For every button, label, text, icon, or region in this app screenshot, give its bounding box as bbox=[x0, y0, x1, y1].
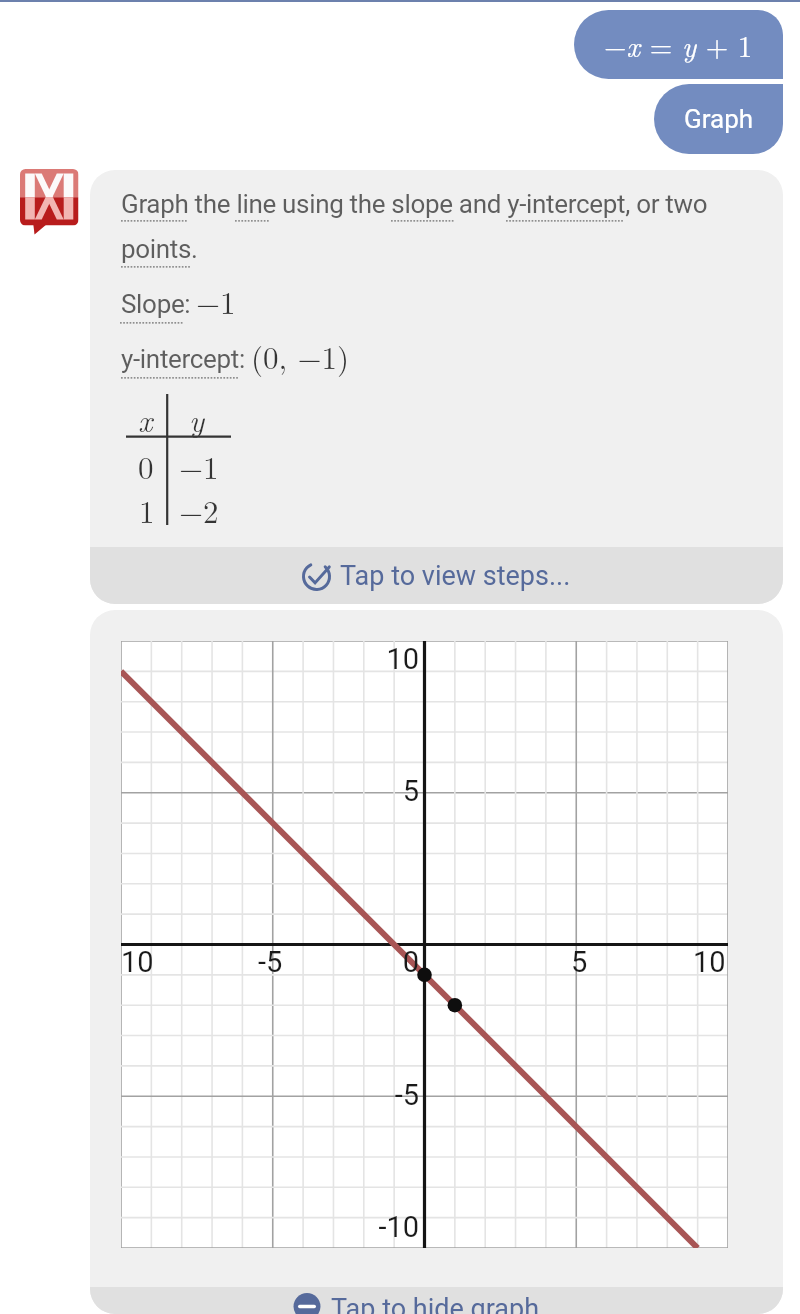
staticText: y bbox=[189, 397, 205, 441]
staticText: 10 bbox=[693, 945, 726, 979]
staticText: −x = y + 1 bbox=[604, 24, 753, 65]
staticText: (0, −1) bbox=[251, 334, 350, 378]
staticText: −1 bbox=[179, 444, 219, 488]
staticText: -5 bbox=[258, 945, 283, 979]
staticText: Tap to view steps... bbox=[340, 560, 571, 592]
staticText: Slope: bbox=[121, 289, 191, 319]
button[interactable]: −x = y + 1 bbox=[574, 10, 783, 79]
other: Hide graph bbox=[293, 1293, 321, 1314]
staticText: Graph the line using the slope and y-int… bbox=[121, 189, 708, 219]
staticText: Graph bbox=[684, 104, 754, 134]
staticText: -10 bbox=[359, 1210, 419, 1244]
staticText: points. bbox=[121, 234, 198, 264]
staticText: 1 bbox=[139, 488, 155, 532]
staticText: 0 bbox=[359, 945, 419, 979]
staticText: Tap to hide graph bbox=[331, 1293, 540, 1314]
button[interactable]: View steps bbox=[90, 547, 783, 604]
staticText: 5 bbox=[571, 945, 588, 979]
staticText: x bbox=[138, 397, 153, 441]
staticText: −1 bbox=[196, 279, 236, 323]
staticText: -10 bbox=[121, 945, 154, 979]
staticText: −2 bbox=[179, 488, 219, 532]
staticText: 5 bbox=[359, 774, 419, 808]
staticText: y-intercept: bbox=[121, 344, 245, 374]
button[interactable]: Hide graph bbox=[90, 1287, 783, 1314]
staticText: 0 bbox=[138, 444, 154, 488]
staticText: 10 bbox=[359, 642, 419, 676]
other: View steps bbox=[302, 562, 331, 591]
staticText: -5 bbox=[359, 1078, 419, 1112]
button[interactable]: Graph bbox=[654, 84, 783, 154]
